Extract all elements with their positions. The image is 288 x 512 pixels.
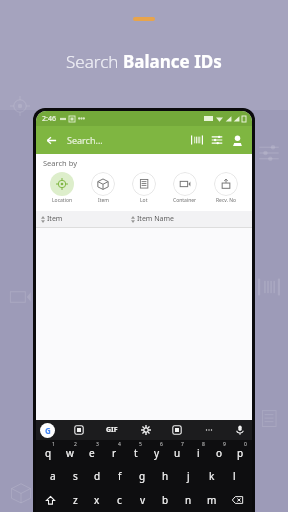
button[interactable]: 1 [37,440,59,464]
staticText: 7 [181,441,184,448]
staticText: 5 [139,441,142,448]
staticText: Container [173,197,197,204]
button[interactable]: Lot [124,171,164,205]
staticText: 8 [202,441,205,448]
button[interactable]: 5 [125,440,146,464]
button[interactable]: Google [40,423,55,438]
button[interactable]: h [154,464,177,488]
staticText: Location [52,197,73,204]
staticText: Item [47,214,63,224]
staticText: n [185,493,192,507]
button[interactable]: GIF [102,425,122,435]
button[interactable]: Location [42,171,82,205]
button[interactable]: j [177,464,200,488]
staticText: x [94,493,100,507]
staticText: 9 [223,441,226,448]
button[interactable]: l [223,464,246,488]
button[interactable]: 9 [209,440,230,464]
staticText: 0 [244,441,247,448]
button[interactable]: Container [165,171,205,205]
staticText: v [140,493,146,507]
button[interactable]: 7 [167,440,188,464]
button[interactable]: 8 [188,440,209,464]
button[interactable]: Item [83,171,123,205]
staticText: f [118,469,122,483]
staticText: GIF [106,425,118,435]
button[interactable]: 3 [81,440,103,464]
staticText: 2:46 [42,114,56,124]
button[interactable]: 6 [146,440,167,464]
staticText: a [50,469,56,483]
staticText: 6 [160,441,163,448]
staticText: Lot [140,197,148,204]
staticText: z [73,493,78,507]
staticText: Search... [67,134,103,146]
staticText: 3 [96,441,99,448]
button[interactable]: c [108,488,131,512]
staticText: Item [98,197,109,204]
button[interactable]: Item Name [131,214,247,224]
button[interactable]: Recv. No [206,171,246,205]
button[interactable]: k [200,464,223,488]
staticText: e [89,446,95,460]
staticText: m [207,493,217,507]
staticText: w [66,446,74,460]
button[interactable]: Voice input [232,422,248,438]
button[interactable]: n [177,488,200,512]
button[interactable]: Shift [36,488,64,512]
staticText: p [237,446,244,460]
button[interactable]: b [154,488,177,512]
staticText: j [187,469,190,483]
staticText: Search [66,50,123,73]
button[interactable]: v [131,488,154,512]
staticText: s [73,469,78,483]
staticText: 2 [74,441,77,448]
button[interactable]: z [64,488,86,512]
staticText: Recv. No [216,197,237,204]
staticText: r [112,446,117,460]
staticText: h [162,469,169,483]
staticText: Search by [43,158,77,168]
button[interactable]: m [200,488,223,512]
button[interactable]: a [42,464,64,488]
button[interactable]: Item [41,214,131,224]
button[interactable]: More [201,422,217,438]
button[interactable]: Scan barcode [187,130,207,150]
staticText: q [45,446,52,460]
button[interactable]: 4 [103,440,125,464]
staticText: k [209,469,215,483]
button[interactable]: Settings [138,422,154,438]
button[interactable]: x [86,488,108,512]
staticText: 4 [118,441,121,448]
staticText: c [117,493,122,507]
button[interactable]: Stickers [71,422,87,438]
button[interactable]: Account [227,130,247,150]
button[interactable]: Backspace [223,488,252,512]
button[interactable]: g [131,464,154,488]
button[interactable]: s [64,464,86,488]
button[interactable]: Back [41,130,61,150]
staticText: l [233,469,236,483]
staticText: y [154,446,160,460]
staticText: Item Name [137,214,174,224]
staticText: G [45,425,51,436]
button[interactable]: f [108,464,131,488]
staticText: Balance IDs [123,50,222,73]
button[interactable]: Search... [67,134,187,146]
staticText: b [162,493,169,507]
staticText: i [197,446,200,460]
staticText: o [216,446,223,460]
staticText: g [139,469,146,483]
staticText: 1 [52,441,55,448]
button[interactable]: Translate [169,422,185,438]
staticText: d [94,469,101,483]
button[interactable]: Filter [207,130,227,150]
staticText: u [174,446,181,460]
button[interactable]: 2 [59,440,81,464]
button[interactable]: d [86,464,108,488]
button[interactable]: 0 [230,440,251,464]
staticText: t [134,446,138,460]
